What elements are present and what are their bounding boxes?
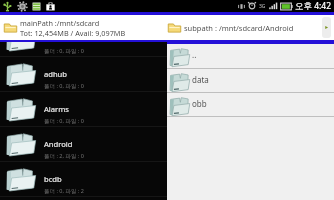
staticText: 폴더 : 2, 파일 : 0 [44,152,84,160]
staticText: 폴더 : 0, 파일 : 0 [44,47,84,55]
button[interactable]: obb [167,93,334,117]
staticText: 폴더 : 0, 파일 : 0 [44,82,84,90]
button[interactable]: Android [0,127,167,162]
staticText: Android [44,139,73,149]
staticText: data [192,74,209,85]
staticText: subpath : /mnt/sdcard/Android [184,23,294,33]
button[interactable]: mainPath :/mnt/sdcard [0,15,165,40]
staticText: mainPath :/mnt/sdcard [20,18,100,28]
staticText: 폴더 : 0, 파일 : 0 [44,117,84,125]
button[interactable]: Alarms [0,92,167,127]
button[interactable]: data [167,69,334,93]
button[interactable]: ... [0,42,167,57]
button[interactable]: Expand path [322,17,331,38]
staticText: adhub [44,69,67,79]
button[interactable]: bcdb [0,162,167,197]
staticText: 오후 4:42 [295,0,332,12]
staticText: 3G [259,3,266,10]
staticText: Alarms [44,104,69,114]
button[interactable]: .. [167,44,334,69]
staticText: 폴더 : 0, 파일 : 2 [44,187,84,195]
button[interactable]: adhub [0,57,167,92]
staticText: obb [192,98,207,109]
staticText: bcdb [44,174,62,184]
button[interactable]: subpath : /mnt/sdcard/Android [165,15,334,40]
staticText: .. [192,49,197,60]
staticText: Tot: 12,454MB / Avail: 9,097MB [20,28,126,38]
